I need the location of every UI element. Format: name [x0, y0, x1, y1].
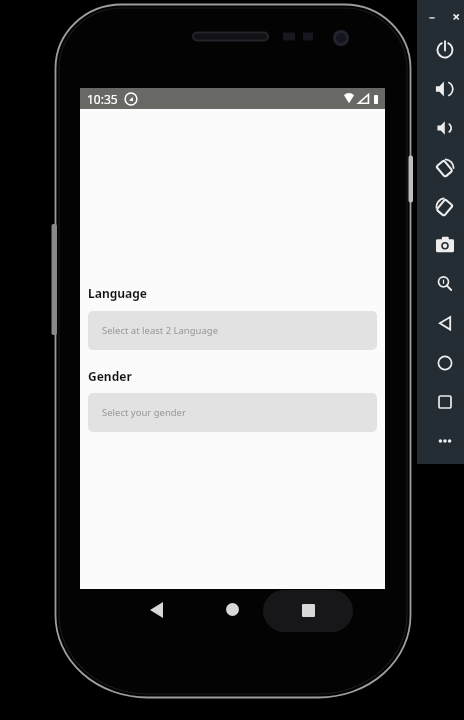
- button[interactable]: Take screenshot: [422, 228, 459, 262]
- staticText: Select at least 2 Language: [102, 324, 218, 337]
- button[interactable]: Home: [422, 346, 459, 380]
- button[interactable]: Select your gender: [88, 393, 377, 432]
- button[interactable]: More: [422, 424, 459, 458]
- staticText: Select your gender: [102, 406, 186, 419]
- button[interactable]: Zoom: [422, 267, 459, 301]
- button[interactable]: Minimize: [422, 8, 442, 27]
- button[interactable]: Back: [422, 306, 459, 340]
- button[interactable]: Volume up: [422, 72, 459, 106]
- staticText: Language: [88, 285, 148, 301]
- button[interactable]: Volume down: [422, 111, 459, 145]
- button[interactable]: Power: [422, 33, 459, 67]
- button[interactable]: Overview: [422, 385, 459, 419]
- staticText: 10:35: [87, 91, 118, 107]
- button[interactable]: Recent apps: [263, 590, 353, 632]
- button[interactable]: Rotate left: [422, 151, 459, 185]
- button[interactable]: Close: [446, 8, 464, 27]
- staticText: Gender: [88, 368, 132, 384]
- button[interactable]: Select at least 2 Language: [88, 311, 377, 350]
- button[interactable]: Back: [122, 590, 190, 630]
- button[interactable]: Home: [199, 589, 266, 629]
- button[interactable]: Rotate right: [422, 190, 459, 224]
